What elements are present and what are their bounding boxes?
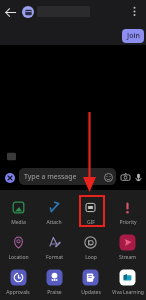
button[interactable]: Microphone [132,171,144,183]
staticText: Loop [85,254,97,260]
staticText: Approvals [6,289,30,295]
staticText: Stream [119,254,136,260]
staticText: Join [127,31,140,41]
button[interactable]: Back [1,3,19,21]
button[interactable]: Type a message [19,168,116,185]
button[interactable]: Camera [119,171,131,183]
button[interactable]: Loop [72,225,109,260]
button[interactable]: Updates [72,260,109,295]
staticText: Media [11,219,26,225]
staticText: Viva Learning [112,289,144,295]
button[interactable]: Join [122,29,144,43]
staticText: Updates [81,289,101,295]
button[interactable]: Approvals [0,260,36,295]
button[interactable]: Chat avatar [22,6,34,18]
staticText: Priority [119,219,137,225]
button[interactable]: Viva Learning [109,260,146,295]
button[interactable]: Close attachments [5,173,15,183]
button[interactable]: Location [0,225,36,260]
staticText: Location [8,254,29,260]
button[interactable]: Format [36,225,72,260]
button[interactable]: Media [0,190,36,225]
staticText: GIF [87,219,95,225]
staticText: Praise [47,289,62,295]
staticText: Type a message [24,172,77,182]
button[interactable]: Stream [109,225,146,260]
button[interactable]: Priority [109,190,146,225]
staticText: Format [46,254,63,260]
button[interactable]: GIF [72,190,109,225]
staticText: Attach [46,219,62,225]
button[interactable]: Attach [36,190,72,225]
button[interactable]: Emoji [102,171,114,183]
button[interactable]: More options [124,1,144,21]
button[interactable]: Praise [36,260,72,295]
